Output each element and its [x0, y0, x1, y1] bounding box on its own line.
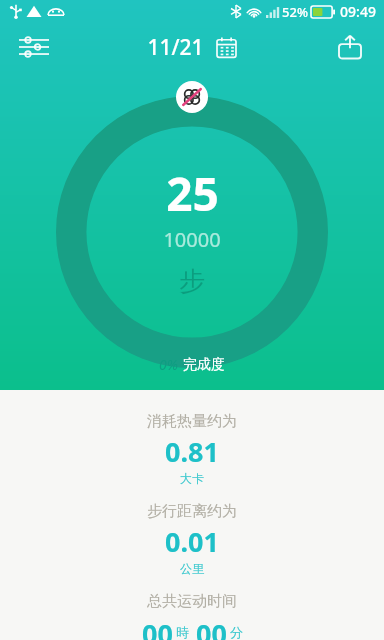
staticText: 11/21 [147, 33, 204, 62]
staticText: 10000 [163, 226, 221, 253]
staticText: 52% [282, 3, 308, 21]
staticText: 分 [230, 624, 243, 640]
button[interactable]: Settings [12, 25, 56, 69]
staticText: 0.01 [165, 523, 219, 560]
button[interactable]: Not connected [176, 81, 208, 113]
button[interactable]: Share [328, 25, 372, 69]
staticText: 時 [176, 624, 189, 640]
staticText: 大卡 [180, 471, 204, 486]
staticText: 0.81 [165, 433, 219, 470]
staticText: 0% [159, 355, 178, 374]
staticText: 总共运动时间 [147, 592, 237, 611]
staticText: 公里 [180, 561, 204, 576]
staticText: 00 [142, 615, 173, 640]
staticText: 消耗热量约为 [147, 412, 237, 431]
staticText: 步 [179, 265, 205, 298]
staticText: 09:49 [340, 2, 376, 21]
button[interactable]: 11/21 [147, 33, 237, 62]
staticText: 00 [196, 615, 227, 640]
staticText: 步行距离约为 [147, 502, 237, 521]
staticText: 完成度 [183, 356, 225, 374]
staticText: 25 [166, 162, 219, 225]
